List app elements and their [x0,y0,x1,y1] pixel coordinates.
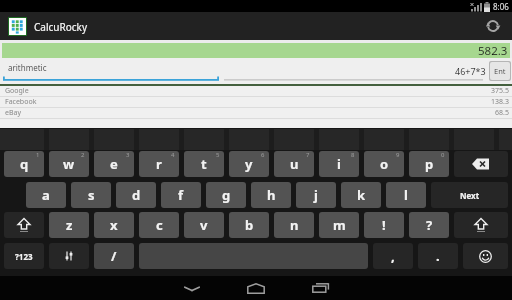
button[interactable]: v [184,212,224,238]
button[interactable] [454,212,508,238]
staticText: 3 [126,151,130,159]
staticText: 5 [216,151,220,159]
button[interactable]: 6 [229,151,269,177]
button[interactable]: d [116,182,156,208]
button[interactable] [454,151,508,177]
button[interactable]: 8 [319,151,359,177]
staticText: d [132,186,141,204]
button[interactable]: ! [364,212,404,238]
staticText: 582.3 [478,43,508,58]
staticText: b [245,216,254,234]
button[interactable]: ?123 [4,243,44,269]
button[interactable] [240,276,272,300]
staticText: 46+7*3 [455,65,486,77]
staticText: u [290,155,299,173]
staticText: w [63,155,75,173]
staticText: n [290,216,299,234]
button[interactable]: Next [431,182,508,208]
staticText: r [156,155,162,173]
button[interactable]: z [49,212,89,238]
button[interactable] [463,243,508,269]
button[interactable]: j [296,182,336,208]
staticText: s [88,186,95,204]
button[interactable]: 9 [364,151,404,177]
staticText: x [110,216,118,234]
staticText: 1 [36,151,40,159]
button[interactable]: n [274,212,314,238]
button[interactable] [49,243,89,269]
staticText: m [333,216,346,234]
button[interactable]: Ent [490,62,510,80]
button[interactable]: 3 [94,151,134,177]
staticText: . [436,247,440,265]
button[interactable]: Facebook [0,97,512,107]
staticText: j [314,186,318,204]
staticText: 375.5 [491,86,509,96]
staticText: / [111,247,117,265]
staticText: k [357,186,366,204]
button[interactable]: s [71,182,111,208]
button[interactable]: m [319,212,359,238]
staticText: arithmetic [8,62,47,73]
staticText: , [391,247,395,265]
button[interactable]: ? [409,212,449,238]
staticText: i [337,155,341,173]
staticText: c [156,216,163,234]
button[interactable] [304,276,336,300]
staticText: 2 [81,151,85,159]
button[interactable]: c [139,212,179,238]
staticText: 68.5 [495,108,509,118]
staticText: ?123 [15,251,33,262]
staticText: e [110,155,118,173]
button[interactable]: x [94,212,134,238]
button[interactable] [4,212,44,238]
button[interactable]: 2 [49,151,89,177]
staticText: 138.3 [491,97,509,107]
staticText: CalcuRocky [34,20,87,34]
staticText: Facebook [5,97,37,107]
staticText: 8 [351,151,355,159]
staticText: z [66,216,73,234]
button[interactable]: 7 [274,151,314,177]
staticText: t [201,155,207,173]
staticText: g [222,186,231,204]
staticText: 4 [171,151,175,159]
staticText: 8:06 [493,1,509,12]
button[interactable]: 0 [409,151,449,177]
button[interactable]: 5 [184,151,224,177]
button[interactable]: eBay [0,108,512,118]
staticText: a [42,186,50,204]
staticText: 6 [261,151,265,159]
staticText: v [200,216,208,234]
staticText: q [20,155,29,173]
button[interactable]: Google [0,86,512,96]
button[interactable]: l [386,182,426,208]
button[interactable]: 4 [139,151,179,177]
button[interactable]: / [94,243,134,269]
staticText: ? [426,216,433,234]
button[interactable]: b [229,212,269,238]
button[interactable]: , [373,243,413,269]
staticText: eBay [5,108,21,118]
staticText: Ent [494,66,506,76]
button[interactable]: k [341,182,381,208]
staticText: Next [460,190,480,201]
staticText: f [178,186,184,204]
staticText: ! [382,216,386,234]
staticText: 0 [441,151,445,159]
button[interactable]: . [418,243,458,269]
button[interactable]: a [26,182,66,208]
staticText: p [425,155,434,173]
button[interactable] [176,276,208,300]
button[interactable] [484,17,502,35]
button[interactable]: 1 [4,151,44,177]
button[interactable]: g [206,182,246,208]
staticText: Google [5,86,29,96]
staticText: 7 [306,151,310,159]
button[interactable]: f [161,182,201,208]
staticText: h [267,186,276,204]
staticText: l [404,186,408,204]
staticText: 9 [396,151,400,159]
button[interactable]: h [251,182,291,208]
